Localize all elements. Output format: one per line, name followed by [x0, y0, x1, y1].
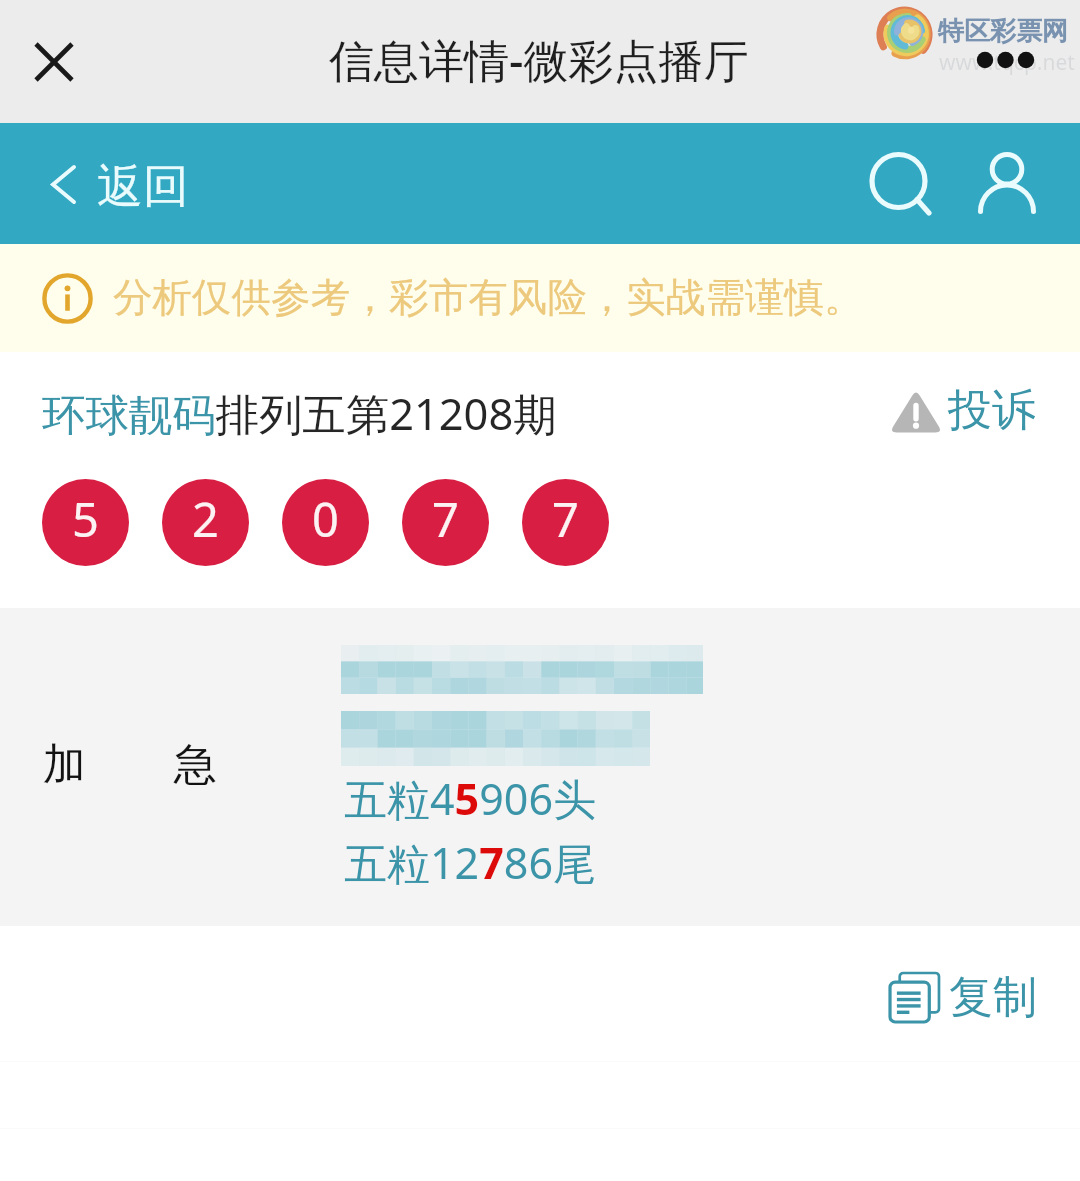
button[interactable]: Close: [20, 28, 88, 96]
button[interactable]: 投诉: [888, 383, 1036, 438]
staticText: 投诉: [948, 383, 1036, 438]
button[interactable]: 加: [0, 608, 1080, 926]
staticText: 环球靓码排列五第21208期: [42, 384, 557, 443]
staticText: 7: [432, 487, 459, 551]
staticText: 5: [72, 487, 99, 551]
staticText: 五粒45906头: [344, 769, 596, 828]
staticText: 急: [174, 738, 217, 792]
staticText: 信息详情-微彩点播厅: [329, 29, 749, 90]
button[interactable]: 复制: [889, 970, 1037, 1025]
button[interactable]: More options: [970, 40, 1034, 80]
button[interactable]: 返回: [51, 155, 189, 213]
staticText: 加: [43, 738, 86, 792]
staticText: 五粒12786尾: [344, 833, 596, 892]
staticText: 2: [192, 487, 219, 551]
staticText: www.tqcp.net: [939, 48, 1075, 77]
staticText: 0: [312, 487, 339, 551]
staticText: 7: [552, 487, 579, 551]
button[interactable]: Account: [964, 141, 1050, 227]
staticText: 分析仅供参考，彩市有风险，实战需谨慎。: [113, 273, 864, 323]
button[interactable]: Search: [857, 140, 945, 228]
staticText: 特区彩票网: [938, 15, 1068, 48]
staticText: 返回: [97, 158, 189, 216]
staticText: 复制: [949, 970, 1037, 1025]
